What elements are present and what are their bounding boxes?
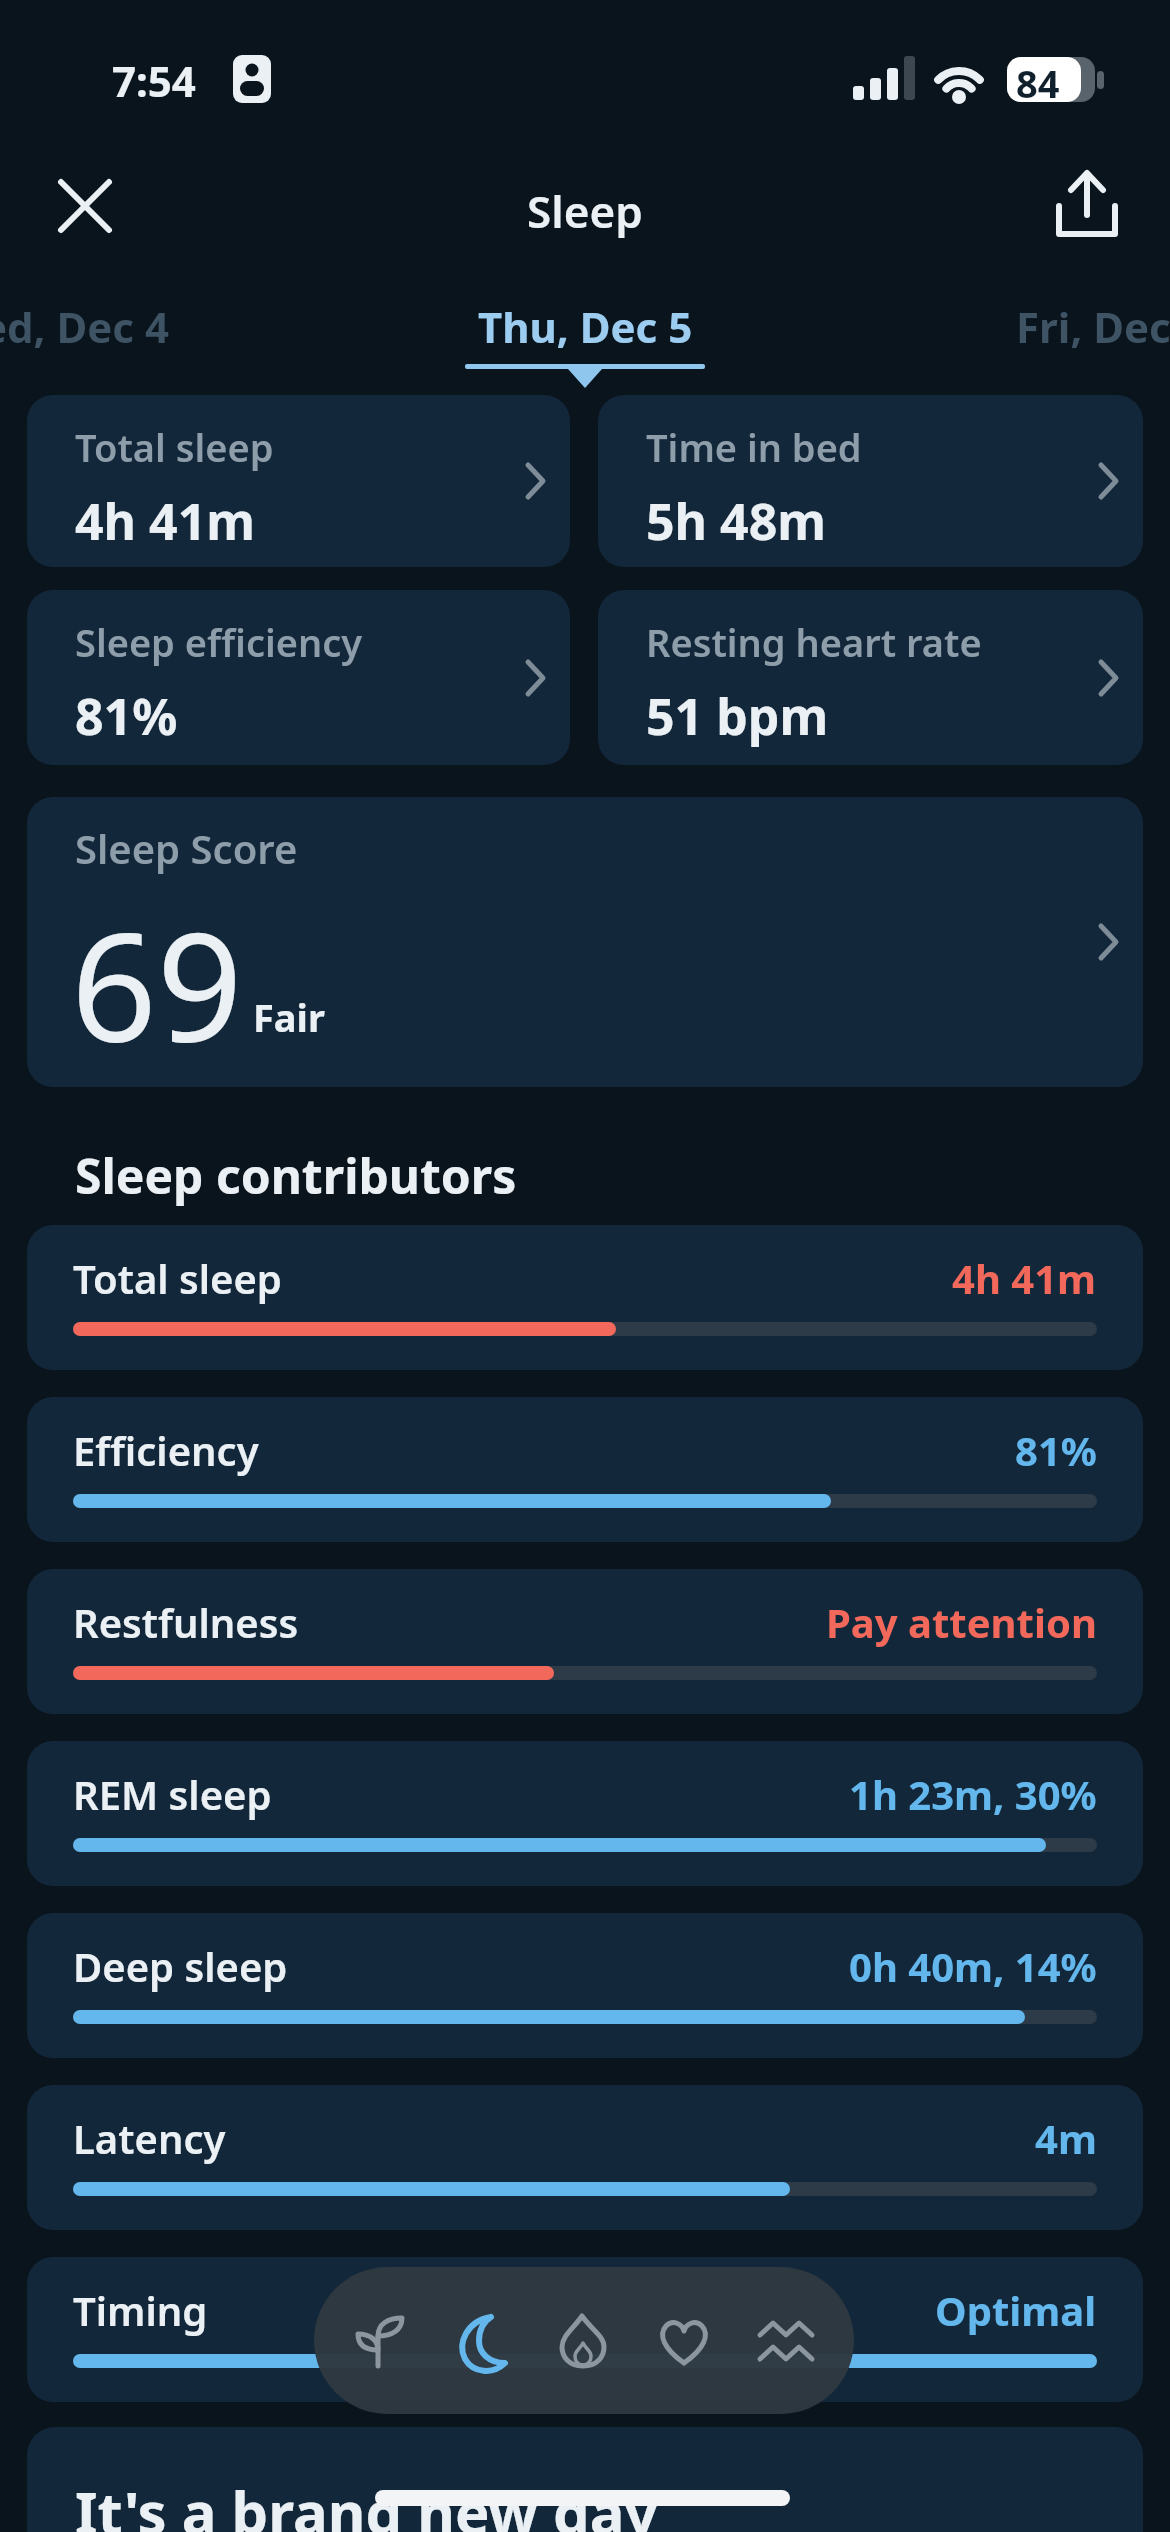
staticText: 1h 23m, 30% (849, 1767, 1097, 1821)
button[interactable] (551, 2309, 615, 2373)
staticText: Total sleep (73, 1251, 282, 1305)
button[interactable]: Sleep Score (27, 797, 1143, 1087)
button[interactable] (652, 2309, 716, 2373)
button[interactable] (58, 179, 112, 233)
staticText: Resting heart rate (646, 616, 982, 668)
staticText: 0h 40m, 14% (849, 1939, 1097, 1993)
staticText: Fair (253, 991, 325, 1043)
staticText: Sleep Score (75, 821, 298, 875)
button[interactable]: Restfulness (27, 1569, 1143, 1714)
staticText: It's a brand new day (75, 2472, 658, 2532)
staticText: 81% (1015, 1423, 1097, 1477)
staticText: REM sleep (73, 1767, 272, 1821)
staticText: 69 (71, 882, 243, 1086)
staticText: Sleep (527, 181, 643, 241)
staticText: 84 (1016, 57, 1060, 109)
staticText: ed, Dec 4 (0, 298, 169, 355)
button[interactable]: Time in bed (598, 395, 1143, 567)
staticText: Fri, Dec (1016, 298, 1170, 355)
button[interactable] (352, 2310, 416, 2374)
staticText: Total sleep (75, 421, 274, 473)
staticText: 4m (1035, 2111, 1097, 2165)
staticText: Sleep contributors (75, 1143, 517, 1208)
button[interactable]: REM sleep (27, 1741, 1143, 1886)
staticText: Optimal (935, 2283, 1097, 2337)
staticText: Efficiency (73, 1423, 259, 1477)
button[interactable]: Total sleep (27, 395, 570, 567)
button[interactable]: Latency (27, 2085, 1143, 2230)
staticText: Latency (73, 2111, 226, 2165)
button[interactable]: Timing (27, 2257, 1143, 2402)
button[interactable]: Resting heart rate (598, 590, 1143, 765)
button[interactable]: Total sleep (27, 1225, 1143, 1370)
button[interactable]: Sleep efficiency (27, 590, 570, 765)
staticText: Pay attention (826, 1595, 1097, 1649)
staticText: 7:54 (112, 52, 196, 109)
staticText: 81% (75, 682, 178, 750)
staticText: Sleep efficiency (75, 616, 363, 668)
staticText: Time in bed (646, 421, 862, 473)
staticText: Timing (73, 2283, 208, 2337)
button[interactable] (756, 2315, 818, 2369)
staticText: 51 bpm (646, 682, 829, 750)
staticText: Restfulness (73, 1595, 299, 1649)
staticText: 4h 41m (952, 1251, 1097, 1305)
button[interactable]: Efficiency (27, 1397, 1143, 1542)
button[interactable]: Deep sleep (27, 1913, 1143, 2058)
button[interactable] (449, 2309, 517, 2377)
staticText: 4h 41m (75, 487, 256, 555)
button[interactable]: Thu, Dec 5 (478, 298, 693, 355)
staticText: 5h 48m (646, 487, 827, 555)
staticText: Deep sleep (73, 1939, 288, 1993)
button[interactable] (1053, 168, 1119, 242)
